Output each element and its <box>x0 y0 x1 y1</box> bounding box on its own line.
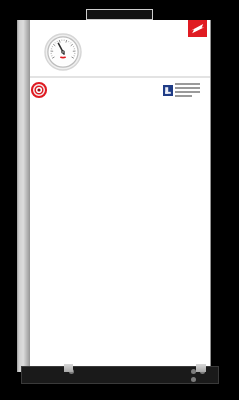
button[interactable]: Energy efficiency label <box>163 82 203 98</box>
button[interactable]: Right side rail <box>197 20 211 372</box>
button[interactable]: Top vent panel <box>86 9 153 20</box>
button[interactable] <box>30 20 210 76</box>
button[interactable]: Brand logo <box>188 20 207 37</box>
button[interactable]: Left side rail <box>17 20 31 372</box>
button[interactable] <box>30 78 210 368</box>
button[interactable]: Reset indicator <box>31 82 47 98</box>
button[interactable]: Pressure gauge <box>45 34 81 70</box>
